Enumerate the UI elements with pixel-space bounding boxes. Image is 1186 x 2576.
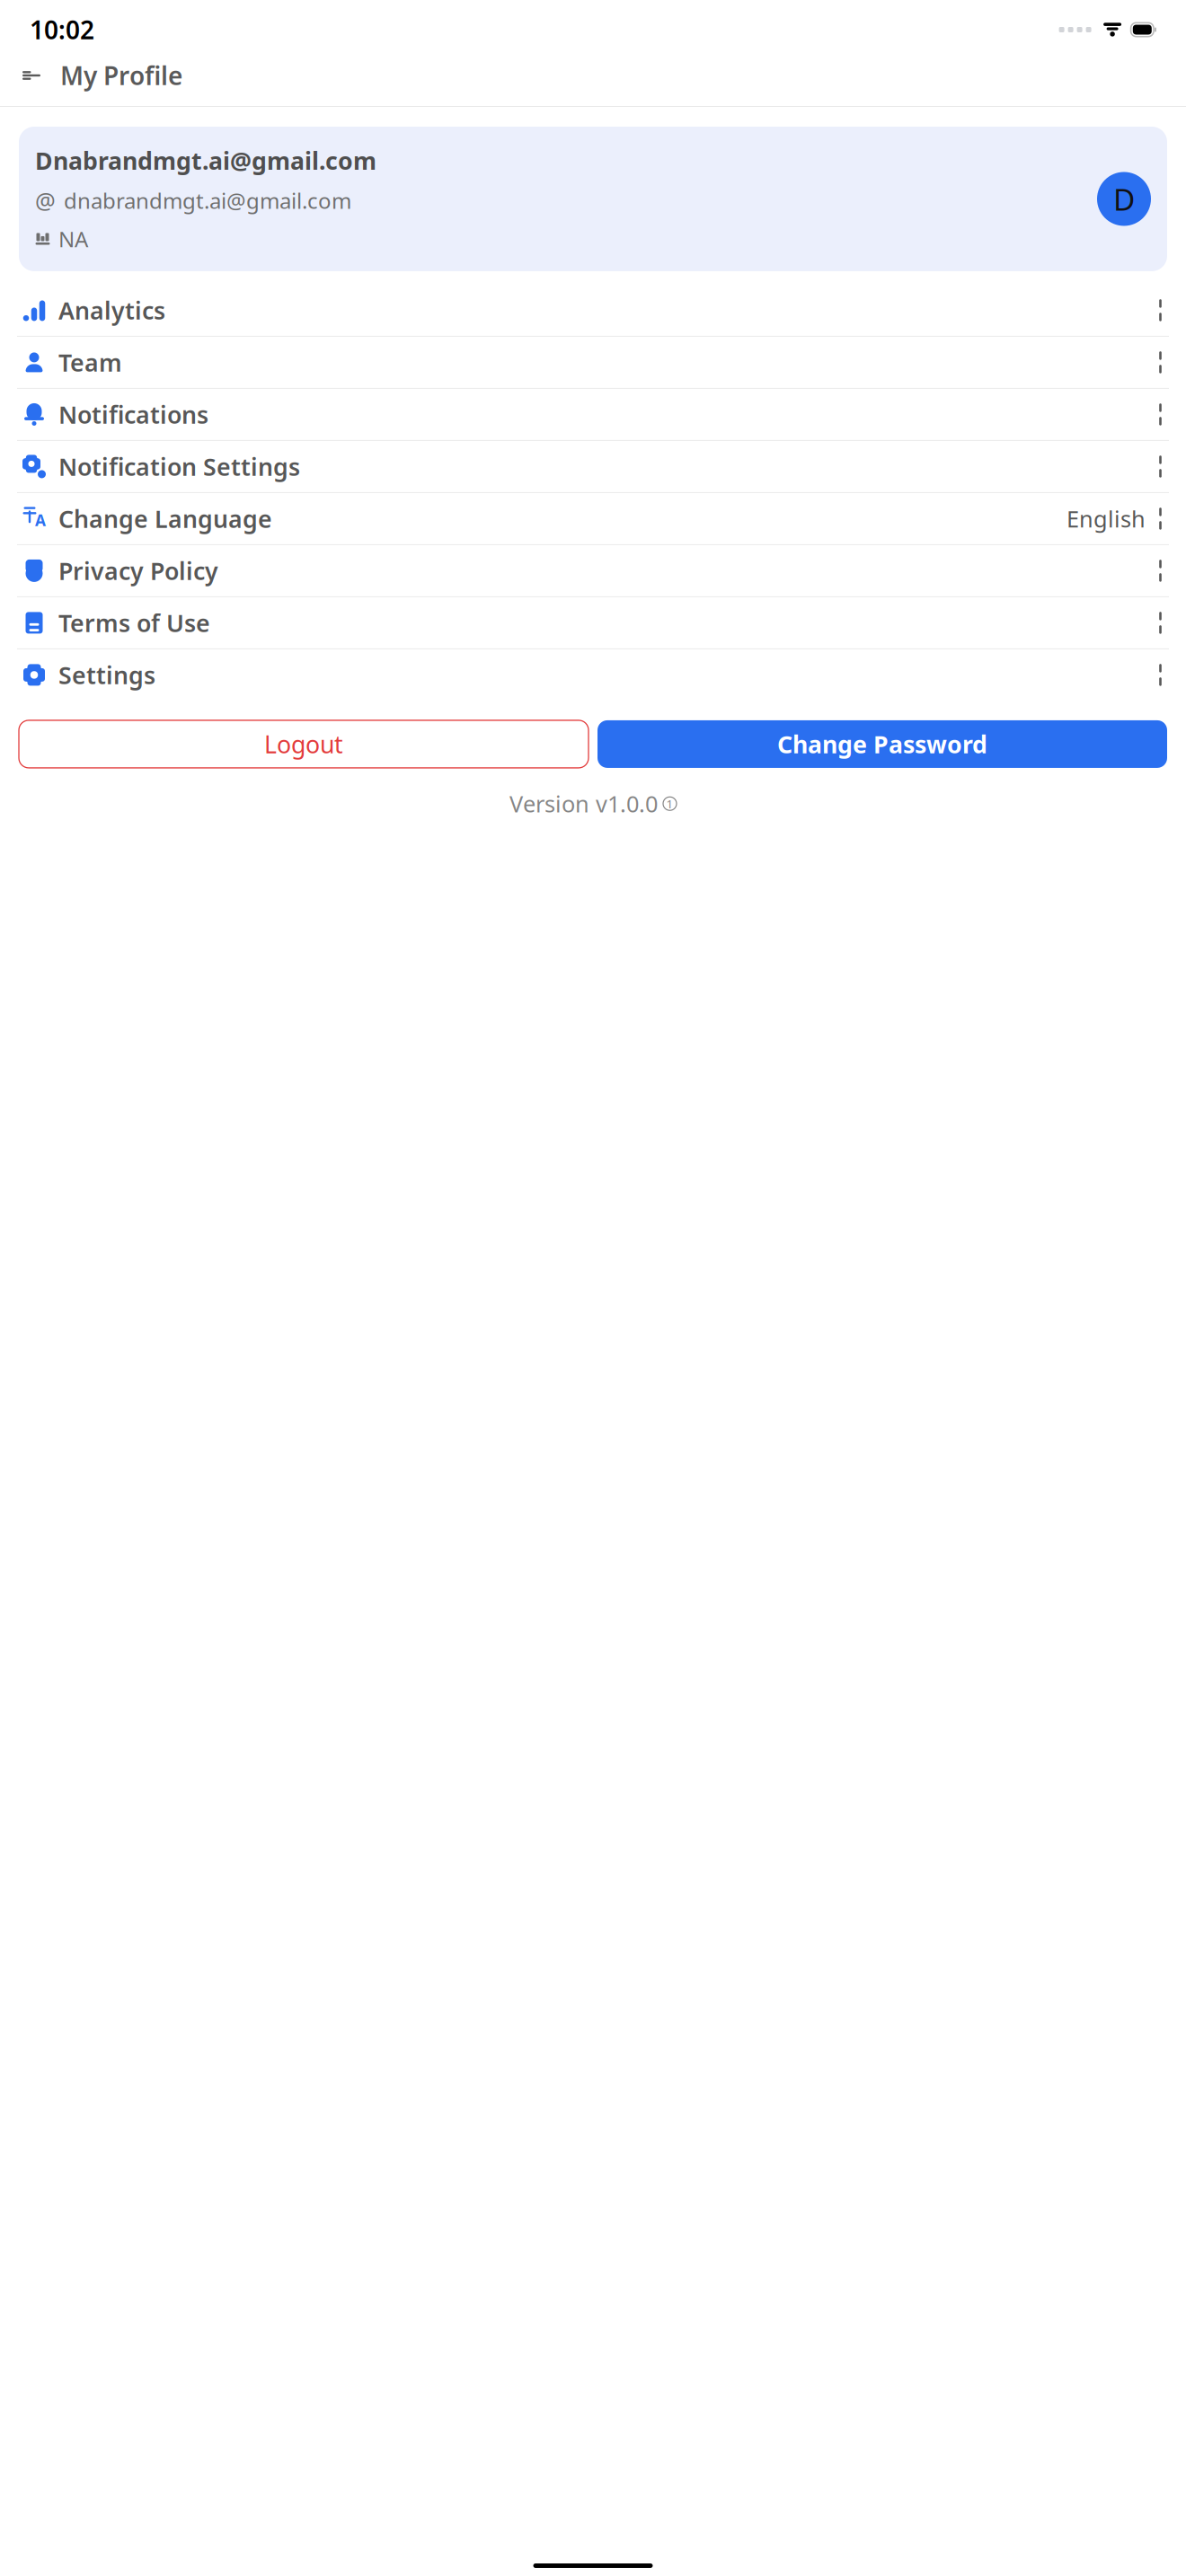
staticText: dnabrandmgt.ai@gmail.com [64,186,351,215]
staticText: Terms of Use [58,607,210,639]
staticText: Privacy Policy [58,555,218,587]
staticText: D [1113,179,1135,219]
staticText: Logout [264,728,343,760]
staticText: Change Password [777,728,987,760]
button[interactable]: Notifications [0,389,1186,440]
staticText: 10:02 [30,13,94,46]
staticText: Analytics [58,294,165,326]
button[interactable]: Terms of Use [0,597,1186,648]
button[interactable]: Analytics [0,285,1186,336]
button[interactable]: Back [11,55,52,96]
staticText: @ [35,185,56,216]
staticText: NA [58,225,88,253]
button[interactable]: Logout [19,720,589,768]
button[interactable]: Privacy Policy [0,545,1186,596]
button[interactable]: Settings [0,649,1186,700]
staticText: Dnabrandmgt.ai@gmail.com [35,145,376,176]
button[interactable]: A [0,493,1186,544]
staticText: English [1067,504,1146,534]
staticText: My Profile [60,59,182,92]
staticText: 1 [666,796,673,812]
staticText: Notifications [58,399,208,430]
staticText: Team [58,346,122,378]
staticText: Change Language [58,503,272,535]
staticText: Version v1.0.0 [509,789,658,819]
staticText: Notification Settings [58,451,300,482]
button[interactable]: Team [0,337,1186,388]
button[interactable]: Change Password [597,720,1167,768]
button[interactable]: Notification Settings [0,441,1186,492]
staticText: A [35,510,46,530]
staticText: Settings [58,659,155,691]
